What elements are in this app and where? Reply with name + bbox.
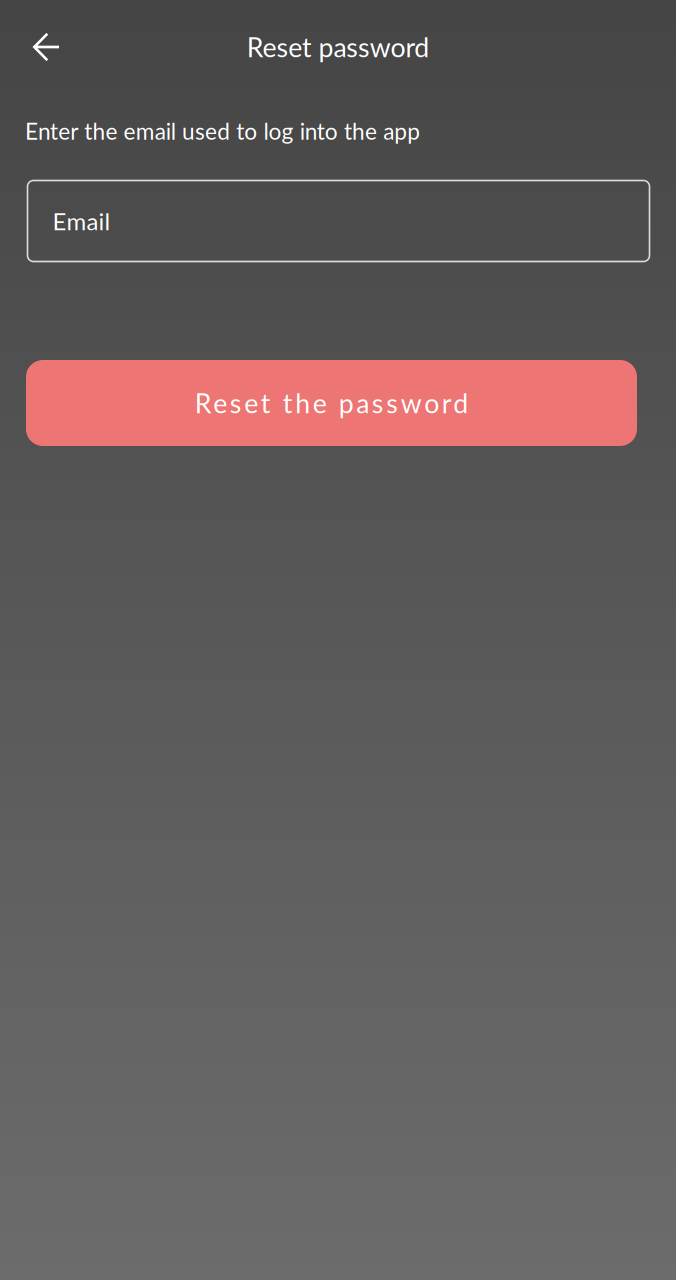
- button[interactable]: Back: [0, 0, 125, 94]
- staticText: Reset password: [247, 31, 429, 63]
- staticText: Reset the password: [195, 387, 468, 419]
- staticText: Email: [52, 207, 110, 235]
- button[interactable]: Email: [27, 180, 649, 261]
- button[interactable]: Reset the password: [26, 360, 637, 446]
- staticText: Enter the email used to log into the app: [25, 117, 420, 145]
